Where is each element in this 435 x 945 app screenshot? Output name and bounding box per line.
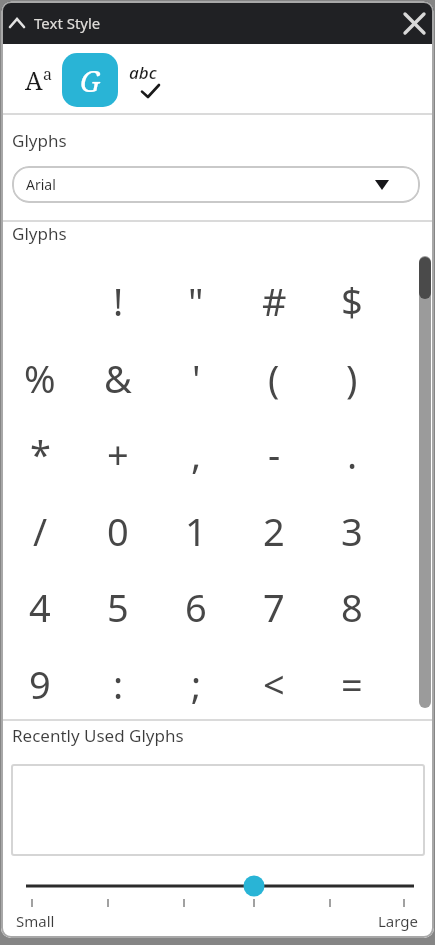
staticText: 4 (29, 581, 51, 633)
button[interactable]: ( (235, 340, 313, 416)
button[interactable] (399, 8, 429, 38)
staticText: 3 (341, 505, 363, 557)
button[interactable]: # (235, 263, 313, 339)
button[interactable]: 7 (235, 569, 313, 645)
staticText: Arial (26, 175, 56, 194)
button[interactable] (1, 263, 79, 339)
button[interactable]: 5 (79, 569, 157, 645)
button[interactable]: ) (313, 340, 391, 416)
button[interactable]: 1 (157, 493, 235, 569)
button[interactable]: ! (79, 263, 157, 339)
button[interactable]: 6 (157, 569, 235, 645)
button[interactable]: " (157, 263, 235, 339)
staticText: 6 (185, 581, 207, 633)
button[interactable] (5, 13, 29, 33)
staticText: Small (16, 911, 55, 931)
button[interactable]: ' (157, 340, 235, 416)
staticText: % (24, 352, 56, 404)
staticText: # (262, 275, 287, 327)
staticText: + (107, 428, 129, 480)
staticText: 2 (263, 505, 285, 557)
staticText: Recently Used Glyphs (12, 724, 184, 747)
staticText: ' (192, 352, 201, 404)
staticText: A (25, 63, 43, 97)
button[interactable] (1, 861, 434, 913)
staticText: a (43, 63, 53, 85)
button[interactable]: % (1, 340, 79, 416)
staticText: Large (378, 911, 419, 931)
staticText: $ (341, 275, 363, 327)
button[interactable]: / (1, 493, 79, 569)
button[interactable]: : (79, 646, 157, 722)
staticText: * (30, 428, 51, 480)
button[interactable]: < (235, 646, 313, 722)
button[interactable]: $ (313, 263, 391, 339)
staticText: 8 (341, 581, 363, 633)
button[interactable]: + (79, 416, 157, 492)
staticText: / (33, 505, 48, 557)
staticText: 5 (107, 581, 129, 633)
button[interactable]: & (79, 340, 157, 416)
staticText: Glyphs (12, 129, 67, 152)
staticText: : (113, 658, 124, 710)
staticText: Glyphs (12, 222, 67, 245)
staticText: . (347, 428, 358, 480)
staticText: abc (129, 61, 157, 84)
staticText: ! (113, 275, 124, 327)
staticText: ) (346, 352, 358, 404)
staticText: ; (191, 658, 202, 710)
staticText: 0 (107, 505, 129, 557)
button[interactable]: 2 (235, 493, 313, 569)
button[interactable]: 0 (79, 493, 157, 569)
button[interactable]: = (313, 646, 391, 722)
button[interactable]: Arial (12, 166, 420, 203)
staticText: = (341, 658, 363, 710)
staticText: 1 (185, 505, 207, 557)
button[interactable]: 3 (313, 493, 391, 569)
button[interactable]: 8 (313, 569, 391, 645)
button[interactable]: 4 (1, 569, 79, 645)
button[interactable]: . (313, 416, 391, 492)
staticText: ( (268, 352, 280, 404)
button[interactable]: - (235, 416, 313, 492)
button[interactable]: A (19, 59, 59, 101)
staticText: - (268, 428, 281, 480)
button[interactable]: ; (157, 646, 235, 722)
staticText: , (191, 428, 202, 480)
button[interactable]: abc (125, 59, 167, 101)
staticText: Text Style (34, 13, 101, 33)
button[interactable]: , (157, 416, 235, 492)
button[interactable]: * (1, 416, 79, 492)
button[interactable]: G (62, 53, 118, 107)
staticText: < (263, 658, 285, 710)
staticText: " (188, 275, 204, 327)
staticText: 7 (263, 581, 285, 633)
staticText: G (80, 61, 101, 100)
staticText: 9 (29, 658, 51, 710)
button[interactable]: 9 (1, 646, 79, 722)
staticText: & (104, 352, 132, 404)
